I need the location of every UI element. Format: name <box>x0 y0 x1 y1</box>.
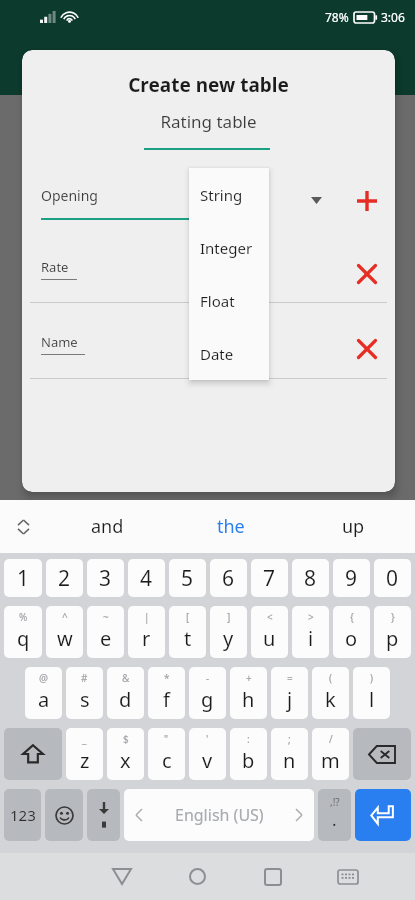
button[interactable]: Home <box>160 853 235 900</box>
staticText: { <box>350 610 354 624</box>
staticText: < <box>267 610 273 624</box>
button[interactable]: / <box>312 728 349 780</box>
staticText: up <box>342 514 365 539</box>
staticText: 8 <box>304 564 317 593</box>
button[interactable]: Backspace <box>353 728 411 780</box>
staticText: g <box>201 686 214 713</box>
staticText: t <box>184 625 192 652</box>
button[interactable]: : <box>230 728 267 780</box>
button[interactable]: @ <box>25 667 62 719</box>
button[interactable]: Hide keyboard <box>310 853 385 900</box>
staticText: Create new table <box>22 72 395 98</box>
button[interactable]: Rate <box>41 258 201 284</box>
button[interactable]: _ <box>66 728 103 780</box>
staticText: e <box>100 625 112 652</box>
staticText: y <box>223 625 234 652</box>
button[interactable]: < <box>251 606 288 658</box>
staticText: 3:06 <box>381 9 405 25</box>
button[interactable]: = <box>271 667 308 719</box>
staticText: _ <box>82 732 87 746</box>
staticText: w <box>57 625 73 652</box>
button[interactable]: 4 <box>128 559 165 597</box>
button[interactable]: String <box>189 168 269 221</box>
button[interactable]: $ <box>107 728 144 780</box>
button[interactable]: } <box>374 606 411 658</box>
staticText: the <box>217 514 245 539</box>
staticText: a <box>38 686 50 713</box>
button[interactable]: ( <box>312 667 349 719</box>
staticText: 2 <box>58 564 71 593</box>
staticText: # <box>81 671 88 685</box>
button[interactable]: % <box>4 606 42 658</box>
staticText: v <box>202 747 213 774</box>
button[interactable]: the <box>169 500 292 553</box>
button[interactable]: > <box>292 606 329 658</box>
button[interactable]: Integer <box>189 221 269 274</box>
staticText: = <box>287 671 293 685</box>
button[interactable]: Name <box>41 333 201 359</box>
button[interactable]: Float <box>189 274 269 327</box>
staticText: String <box>200 185 243 205</box>
button[interactable]: Date <box>189 327 269 380</box>
button[interactable]: { <box>333 606 370 658</box>
button[interactable]: 9 <box>333 559 370 597</box>
staticText: l <box>369 686 375 713</box>
button[interactable]: | <box>128 606 165 658</box>
button[interactable]: 123 <box>4 789 41 841</box>
button[interactable]: Remove Name column <box>348 330 386 368</box>
staticText: ,!? <box>330 795 340 809</box>
staticText: Name <box>41 333 78 351</box>
staticText: Rating table <box>22 110 395 133</box>
button[interactable]: " <box>148 728 185 780</box>
button[interactable]: # <box>66 667 103 719</box>
button[interactable]: & <box>107 667 144 719</box>
staticText: b <box>242 747 255 774</box>
staticText: Date <box>200 344 234 364</box>
button[interactable]: + <box>230 667 267 719</box>
button[interactable]: 3 <box>87 559 124 597</box>
staticText: / <box>329 732 333 746</box>
button[interactable]: up <box>292 500 415 553</box>
button[interactable]: ' <box>189 728 226 780</box>
staticText: p <box>386 625 399 652</box>
button[interactable]: * <box>148 667 185 719</box>
button[interactable]: Shift <box>4 728 62 780</box>
button[interactable]: Remove Rate column <box>348 255 386 293</box>
button[interactable]: 1 <box>4 559 42 597</box>
button[interactable]: 6 <box>210 559 247 597</box>
button[interactable]: ,!? <box>318 789 351 841</box>
button[interactable]: Opening <box>41 186 201 220</box>
staticText: d <box>119 686 132 713</box>
button[interactable]: and <box>46 500 169 553</box>
staticText: r <box>142 625 151 652</box>
button[interactable]: Recent apps <box>235 853 310 900</box>
button[interactable]: 5 <box>169 559 206 597</box>
button[interactable]: 8 <box>292 559 329 597</box>
button[interactable]: [ <box>169 606 206 658</box>
button[interactable]: English (US) <box>124 789 314 841</box>
button[interactable]: ; <box>271 728 308 780</box>
button[interactable]: - <box>189 667 226 719</box>
button[interactable]: 2 <box>46 559 83 597</box>
staticText: Integer <box>200 238 253 258</box>
staticText: k <box>325 686 336 713</box>
button[interactable]: Expand suggestions <box>0 504 46 550</box>
button[interactable]: Enter <box>355 789 411 841</box>
button[interactable]: Select type <box>304 188 328 212</box>
button[interactable]: Back <box>84 853 160 900</box>
button[interactable]: Emoji <box>45 789 83 841</box>
button[interactable]: ) <box>353 667 390 719</box>
staticText: f <box>163 686 170 713</box>
staticText: i <box>308 625 314 652</box>
button[interactable]: Voice input <box>87 789 120 841</box>
button[interactable]: 7 <box>251 559 288 597</box>
button[interactable]: ^ <box>46 606 83 658</box>
button[interactable]: 0 <box>374 559 411 597</box>
staticText: * <box>164 671 170 685</box>
button[interactable]: Add column <box>348 182 386 220</box>
button[interactable]: ~ <box>87 606 124 658</box>
staticText: " <box>164 732 169 746</box>
button[interactable]: ] <box>210 606 247 658</box>
staticText: Float <box>200 291 235 311</box>
staticText: : <box>247 732 250 746</box>
